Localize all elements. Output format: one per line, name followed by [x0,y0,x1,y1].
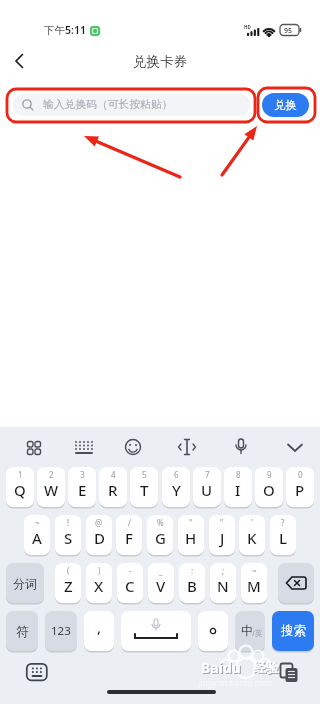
button[interactable] [6,50,34,72]
button[interactable]: ( [55,563,81,603]
button[interactable]: 输入兑换码（可长按粘贴） [13,94,250,116]
staticText: ' [251,517,253,528]
button[interactable]: 5 [130,467,158,507]
button[interactable] [121,611,191,651]
staticText: 0 [298,469,303,480]
staticText: 1 [18,469,23,480]
button[interactable]: ' [239,515,265,555]
staticText: ~ [35,517,40,528]
button[interactable]: : [179,563,205,603]
staticText: ) [98,565,101,576]
staticText: 2 [49,469,54,480]
button[interactable]: 2 [37,467,65,507]
staticText: HD [244,24,251,30]
staticText: D [94,528,105,548]
button[interactable]: ~ [24,515,50,555]
staticText: E [78,480,87,500]
button[interactable] [198,611,228,651]
staticText: Z [64,576,73,596]
staticText: 9 [267,469,272,480]
staticText: 下午5:11 [44,23,86,37]
staticText: : [191,565,194,576]
staticText: Y [172,480,181,500]
button[interactable]: 1 [6,467,34,507]
button[interactable]: _ [148,563,174,603]
staticText: ! [67,517,70,528]
staticText: Baidu [202,659,242,678]
staticText: U [201,480,213,500]
staticText: L [279,528,288,548]
button[interactable]: 8 [224,467,252,507]
button[interactable]: 3 [68,467,96,507]
staticText: , [97,617,102,637]
button[interactable]: , [84,611,114,651]
staticText: Baidu [201,658,241,677]
button[interactable]: " [178,515,204,555]
staticText: " [220,517,224,528]
staticText: - [129,565,132,576]
staticText: @ [95,517,103,528]
staticText: 8 [236,469,241,480]
staticText: J [220,528,225,548]
button[interactable]: - [117,563,143,603]
button[interactable]: % [147,515,173,555]
staticText: % [157,517,164,528]
staticText: W [44,480,59,500]
staticText: " [189,517,193,528]
staticText: ; [222,565,225,576]
button[interactable]: " [209,515,235,555]
button[interactable]: 9 [255,467,283,507]
staticText: ~ [252,565,257,576]
staticText: 兑换卡券 [0,53,320,70]
staticText: 经验 [253,659,279,675]
staticText: X [94,576,104,596]
button[interactable]: 0 [286,467,314,507]
button[interactable] [278,563,314,603]
button[interactable]: 兑换 [262,93,309,117]
button[interactable]: 中 [235,611,265,651]
staticText: H [185,528,197,548]
button[interactable]: 搜索 [272,611,314,651]
staticText: 兑换 [274,98,297,112]
button[interactable] [279,663,301,685]
staticText: 95 [284,26,293,36]
staticText: / [128,517,131,528]
staticText: 分词 [13,576,37,591]
staticText: B [187,576,197,596]
button[interactable]: 符 [6,611,38,651]
button[interactable] [26,663,48,682]
staticText: I [235,480,241,500]
staticText: 输入兑换码（可长按粘贴） [43,98,173,112]
staticText: S [64,528,73,548]
staticText: 5 [142,469,147,480]
button[interactable]: ? [270,515,296,555]
button[interactable]: 123 [45,611,77,651]
button[interactable]: ; [210,563,236,603]
button[interactable]: 4 [99,467,127,507]
button[interactable]: 6 [162,467,190,507]
staticText: Q [14,480,26,500]
staticText: /英 [252,628,263,638]
staticText: _ [159,565,163,576]
staticText: V [156,576,166,596]
staticText: 经验 [254,660,280,676]
button[interactable]: ! [55,515,81,555]
staticText: jingyan.baidu.com [198,677,272,689]
staticText: C [125,576,135,596]
button[interactable]: @ [86,515,112,555]
button[interactable]: ) [86,563,112,603]
staticText: 7 [205,469,210,480]
staticText: 中 [241,623,254,639]
button[interactable]: 分词 [6,563,44,603]
button[interactable] [0,427,320,467]
staticText: 6 [174,469,179,480]
button[interactable]: ~ [241,563,267,603]
staticText: 123 [51,623,71,639]
button[interactable]: 7 [193,467,221,507]
staticText: 3 [80,469,85,480]
staticText: 4 [111,469,116,480]
staticText: ( [67,565,70,576]
button[interactable]: / [116,515,142,555]
staticText: G [155,528,166,548]
staticText: K [247,528,257,548]
